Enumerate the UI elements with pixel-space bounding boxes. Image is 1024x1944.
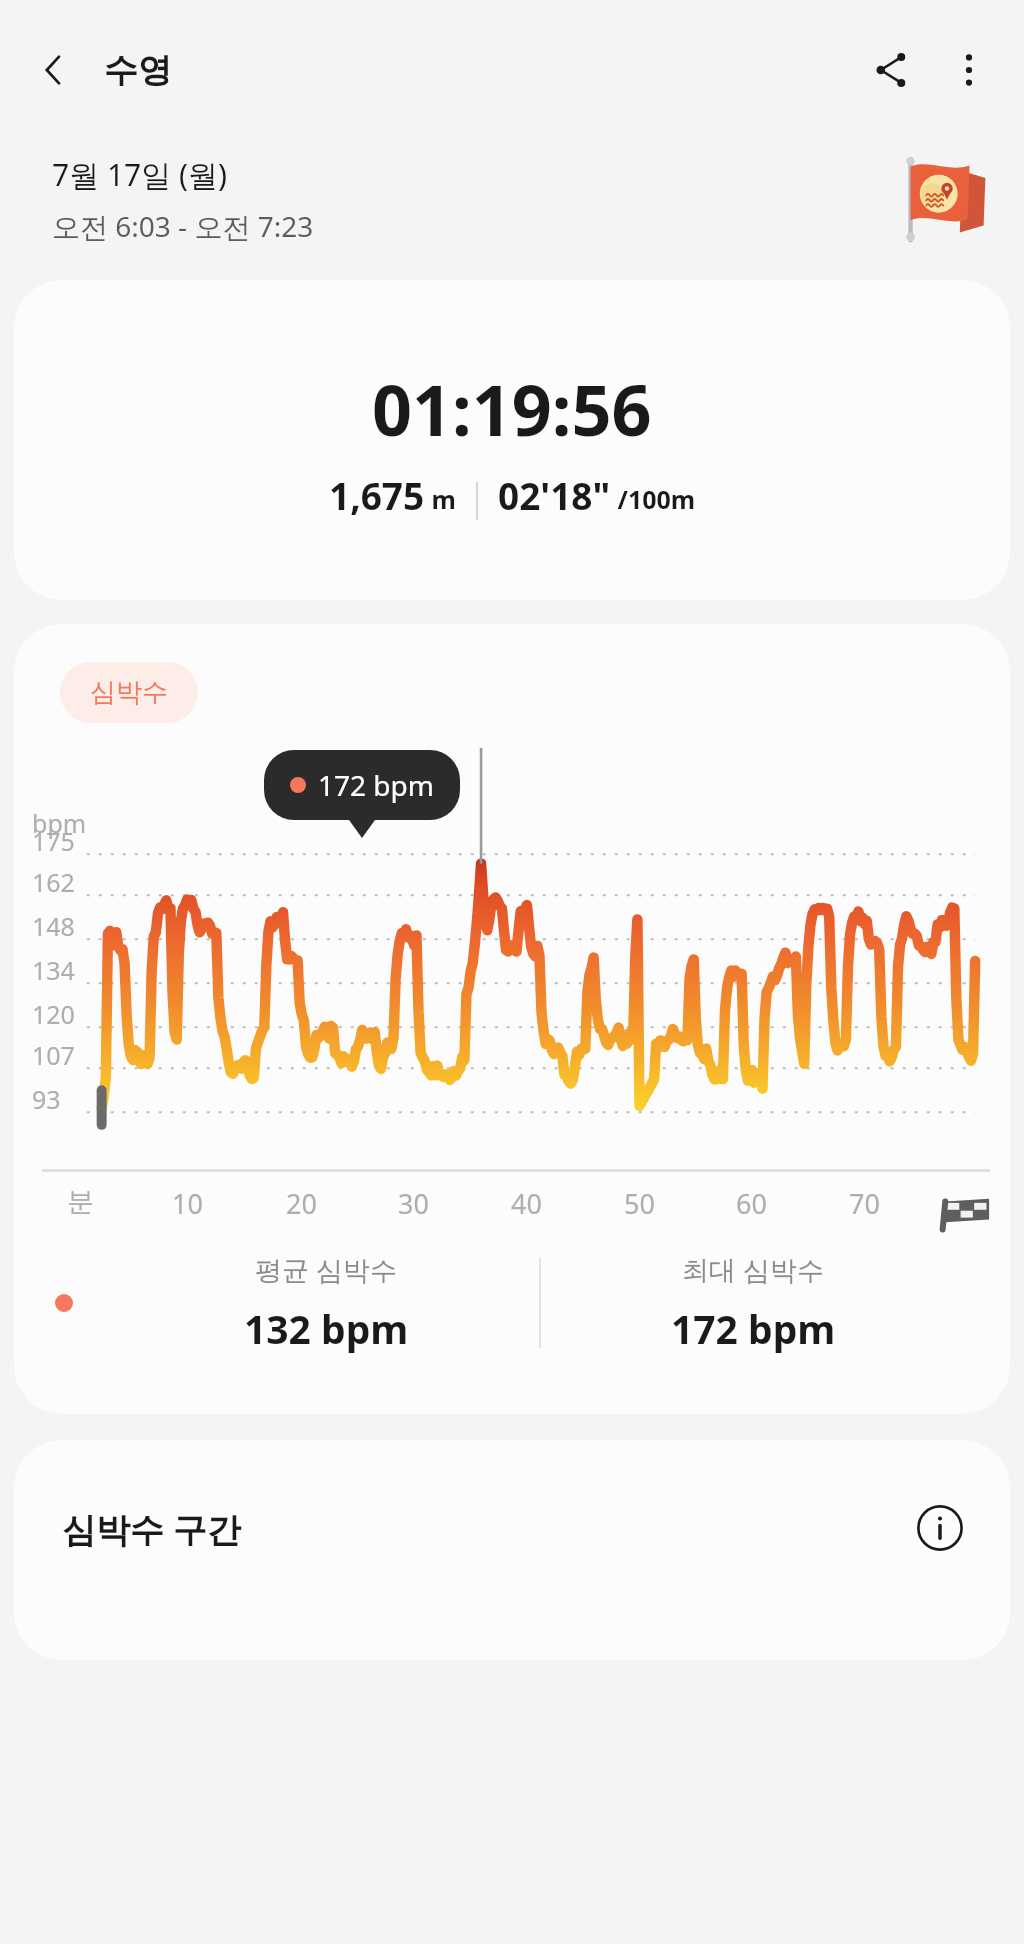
staticText: m [425,482,456,516]
staticText: 132 bpm [244,1302,409,1355]
staticText: /100m [611,482,696,516]
staticText: 20 [286,1185,317,1222]
button[interactable]: Back [22,38,86,102]
staticText: 175 [32,824,75,858]
staticText: 134 [32,953,75,987]
staticText: 7월 17일 (월) [52,154,228,195]
staticText: 172 bpm [318,766,434,804]
staticText: 162 [32,865,75,899]
staticText: 02'18" [498,470,611,520]
button[interactable]: 172 bpm [264,750,460,820]
button[interactable]: More options [934,35,1004,105]
button[interactable]: Information [910,1498,970,1558]
staticText: 172 bpm [671,1302,836,1355]
button[interactable]: 심박수 구간 [14,1440,1010,1660]
button[interactable]: 심박수 [14,624,1010,1414]
staticText: 평균 심박수 [255,1251,398,1288]
button[interactable]: Share [856,35,926,105]
staticText: 1,675 [329,470,425,520]
staticText: 107 [32,1038,75,1072]
staticText: 120 [32,997,75,1031]
button[interactable]: 01:19:56 [14,280,1010,600]
staticText: 심박수 구간 [62,1506,241,1552]
staticText: 01:19:56 [372,361,652,456]
button[interactable]: 심박수 [60,662,198,723]
staticText: 40 [511,1185,542,1222]
button[interactable]: Swimming workout badge [894,149,994,249]
staticText: 10 [172,1185,203,1222]
staticText: 60 [736,1185,767,1222]
staticText: 30 [398,1185,429,1222]
staticText: 148 [32,909,75,943]
staticText: 오전 6:03 - 오전 7:23 [52,207,314,245]
staticText: 70 [849,1185,880,1222]
staticText: 분 [67,1185,94,1219]
staticText: 93 [32,1082,61,1116]
staticText: 수영 [104,49,172,92]
staticText: 심박수 [90,676,168,709]
staticText: 최대 심박수 [682,1251,825,1288]
staticText: bpm [32,806,87,840]
staticText: 50 [624,1185,655,1222]
